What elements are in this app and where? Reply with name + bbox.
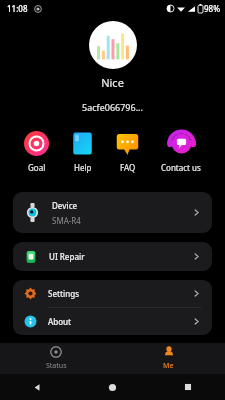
button[interactable]: Help	[66, 129, 99, 175]
staticText: Goal	[28, 162, 46, 173]
staticText: Help	[74, 162, 92, 173]
staticText: SMA-R4	[52, 215, 81, 226]
staticText: Me	[163, 361, 174, 371]
staticText: UI Repair	[49, 251, 85, 262]
staticText: 5acfe066796...	[0, 101, 225, 113]
button[interactable]: About	[13, 308, 212, 335]
button[interactable]: Me	[112, 343, 225, 374]
staticText: Settings	[48, 288, 80, 299]
button[interactable]: Contact us	[157, 129, 205, 175]
staticText: About	[48, 316, 72, 327]
staticText: 11:08	[7, 3, 28, 14]
other: Home	[108, 383, 117, 392]
button[interactable]: UI Repair	[13, 242, 212, 271]
staticText: Device	[52, 200, 78, 211]
other: Back	[33, 383, 42, 392]
button[interactable]: Status	[0, 343, 112, 374]
button[interactable]: Settings	[13, 280, 212, 307]
staticText: 98%	[204, 3, 220, 14]
button[interactable]: Device	[13, 192, 212, 233]
staticText: Contact us	[161, 162, 201, 173]
staticText: Status	[46, 361, 67, 371]
staticText: FAQ	[120, 162, 136, 173]
staticText: Nice	[0, 75, 225, 90]
other: Recents	[184, 383, 192, 391]
button[interactable]: FAQ	[111, 129, 144, 175]
button[interactable]: Goal	[20, 129, 53, 175]
